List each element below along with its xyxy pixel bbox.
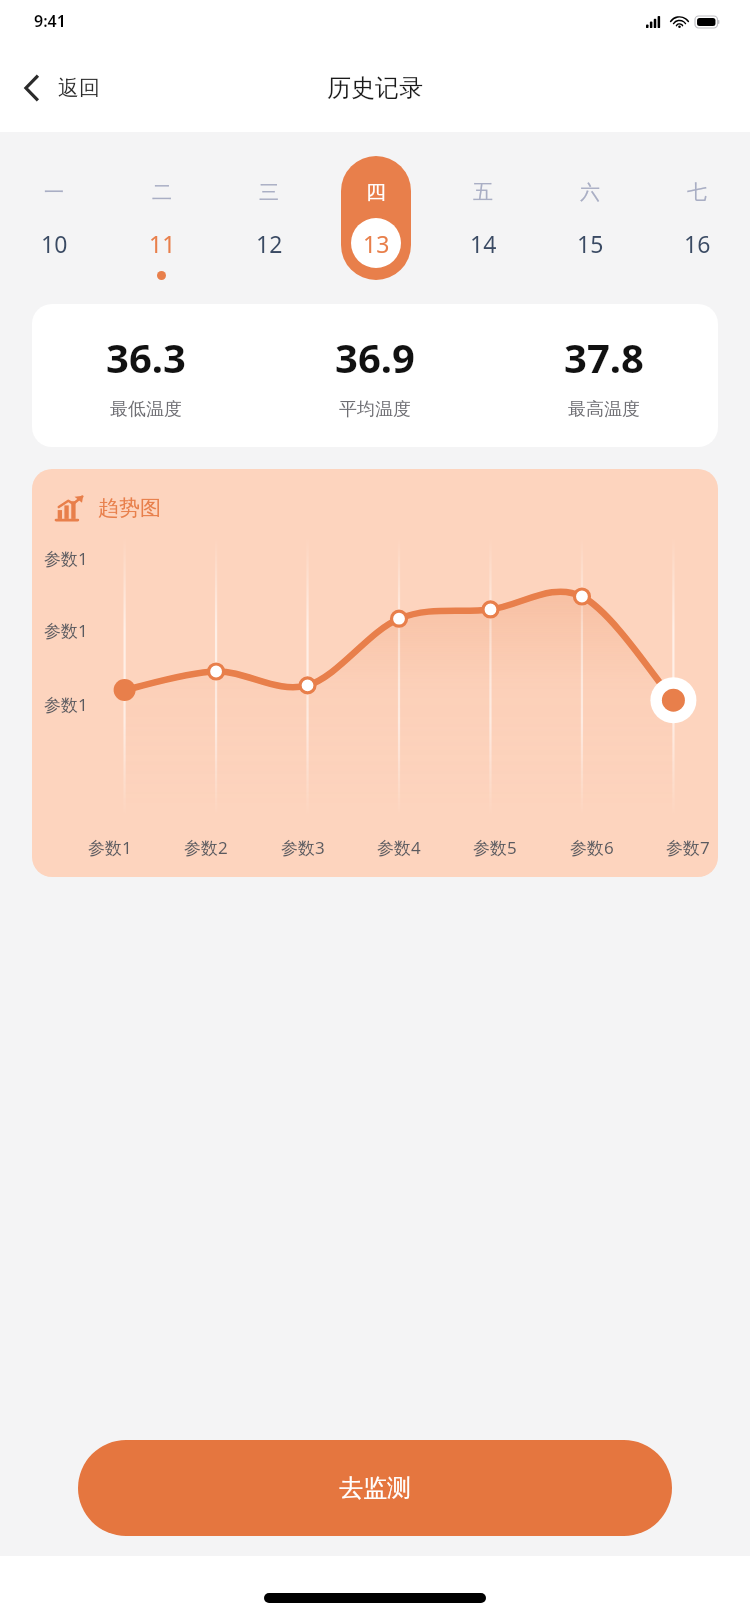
button[interactable]: 36.3 <box>32 304 718 447</box>
staticText: 最高温度 <box>568 398 640 421</box>
staticText: 10 <box>41 228 68 259</box>
staticText: 13 <box>363 228 390 259</box>
staticText: 趋势图 <box>98 495 161 521</box>
button[interactable]: 一 <box>0 156 108 268</box>
button[interactable]: 三 <box>215 156 322 268</box>
button[interactable]: 四 <box>322 156 429 280</box>
staticText: 参数2 <box>184 836 228 859</box>
staticText: 参数6 <box>570 836 614 859</box>
staticText: 参数1 <box>44 693 88 716</box>
button[interactable]: 七 <box>643 156 750 268</box>
staticText: 36.3 <box>106 330 186 384</box>
staticText: 36.9 <box>335 330 415 384</box>
staticText: 二 <box>152 180 172 205</box>
button[interactable]: 二 <box>108 156 215 280</box>
staticText: 参数1 <box>88 836 132 859</box>
staticText: 参数3 <box>281 836 325 859</box>
button[interactable]: 六 <box>536 156 643 268</box>
staticText: 平均温度 <box>339 398 411 421</box>
staticText: 六 <box>580 180 600 205</box>
staticText: 返回 <box>58 75 100 101</box>
staticText: 12 <box>256 228 283 259</box>
staticText: 参数1 <box>44 619 88 642</box>
staticText: 参数7 <box>666 836 710 859</box>
staticText: 参数5 <box>473 836 517 859</box>
staticText: 四 <box>366 180 386 205</box>
button[interactable]: 五 <box>429 156 536 268</box>
staticText: 三 <box>259 180 279 205</box>
staticText: 参数1 <box>44 547 88 570</box>
staticText: 参数4 <box>377 836 421 859</box>
staticText: 历史记录 <box>327 73 423 103</box>
staticText: 9:41 <box>34 10 66 32</box>
staticText: 11 <box>149 228 176 259</box>
staticText: 去监测 <box>339 1473 411 1503</box>
button[interactable]: 去监测 <box>78 1440 672 1536</box>
staticText: 一 <box>44 180 64 205</box>
button[interactable]: 返回 <box>0 66 116 110</box>
staticText: 五 <box>473 180 493 205</box>
staticText: 16 <box>684 228 711 259</box>
staticText: 七 <box>687 180 707 205</box>
staticText: 最低温度 <box>110 398 182 421</box>
button[interactable]: 趋势图 <box>32 469 718 877</box>
staticText: 14 <box>470 228 497 259</box>
staticText: 15 <box>577 228 604 259</box>
staticText: 37.8 <box>564 330 644 384</box>
